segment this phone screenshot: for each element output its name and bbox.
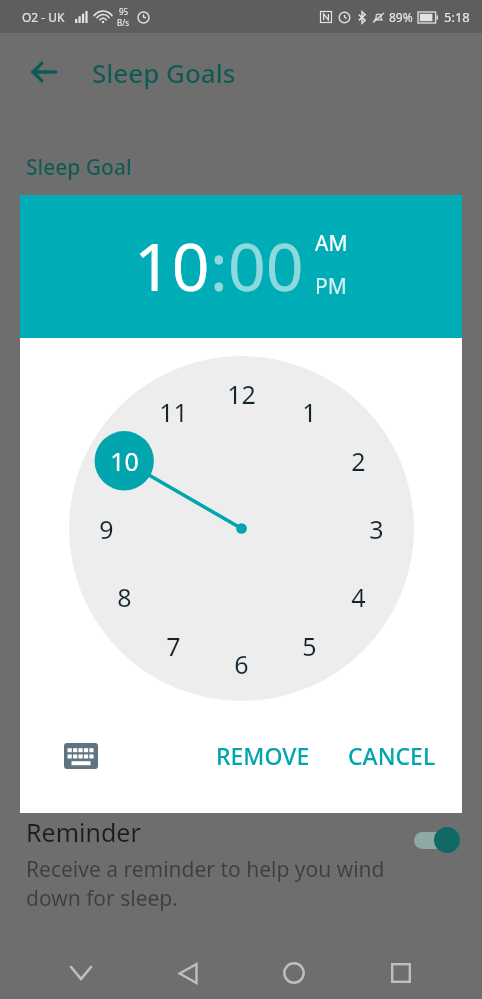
- button[interactable]: Home: [268, 947, 320, 999]
- staticText: 10: [134, 220, 210, 310]
- button[interactable]: Back: [162, 947, 214, 999]
- button[interactable]: Switch to keyboard input: [58, 733, 104, 779]
- staticText: 8: [117, 580, 132, 614]
- staticText: 3: [369, 512, 384, 546]
- staticText: 12: [227, 377, 256, 411]
- staticText: Sleep Goal: [26, 153, 132, 182]
- staticText: 1: [302, 395, 317, 429]
- staticText: 10: [110, 444, 139, 478]
- staticText: B/s: [117, 17, 130, 28]
- staticText: 5:18: [444, 8, 470, 26]
- staticText: 4: [351, 580, 366, 614]
- button[interactable]: REMOVE: [202, 730, 324, 781]
- staticText: REMOVE: [216, 740, 310, 771]
- staticText: 11: [159, 395, 188, 429]
- staticText: 6: [234, 647, 249, 681]
- staticText: Sleep Goals: [92, 55, 236, 90]
- button[interactable]: Recents: [375, 947, 427, 999]
- staticText: 5: [302, 629, 317, 663]
- staticText: Reminder: [26, 815, 141, 849]
- staticText: O2 - UK: [22, 9, 65, 25]
- staticText: 89%: [389, 9, 413, 25]
- staticText: 95: [119, 6, 129, 17]
- button[interactable]: Hide keyboard: [55, 947, 107, 999]
- staticText: 9: [99, 512, 114, 546]
- staticText: AM: [315, 229, 348, 258]
- staticText: :: [210, 220, 228, 310]
- staticText: Receive a reminder to help you wind down…: [26, 855, 400, 913]
- staticText: CANCEL: [348, 740, 436, 771]
- staticText: 7: [166, 629, 181, 663]
- button[interactable]: Back: [18, 46, 70, 98]
- button[interactable]: AM: [315, 229, 348, 258]
- button[interactable]: Reminder toggle: [410, 825, 462, 855]
- staticText: 2: [351, 444, 366, 478]
- button[interactable]: 00: [228, 220, 304, 310]
- button[interactable]: PM: [315, 272, 347, 301]
- staticText: PM: [315, 272, 347, 301]
- button[interactable]: Reminder: [0, 815, 482, 913]
- button[interactable]: CANCEL: [334, 730, 450, 781]
- button[interactable]: 10: [134, 220, 210, 310]
- staticText: 00: [228, 220, 304, 310]
